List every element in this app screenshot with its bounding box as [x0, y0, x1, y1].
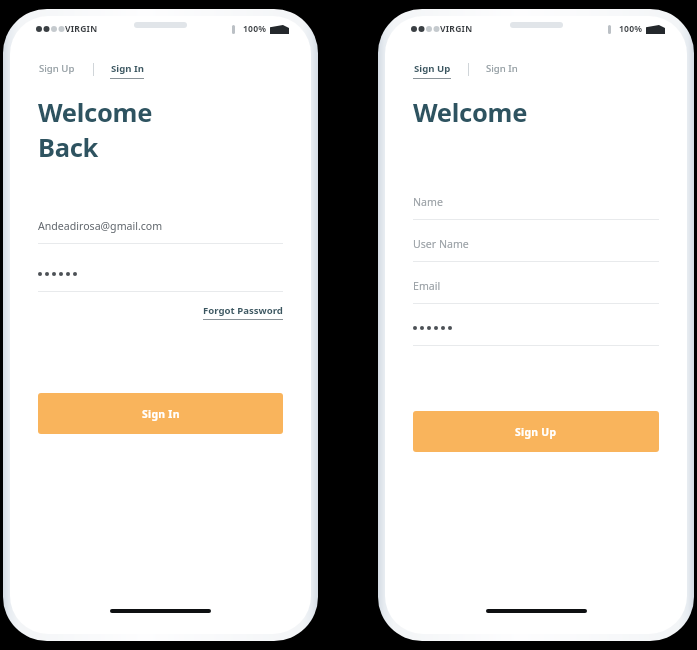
- staticText: Sign In: [111, 62, 144, 75]
- staticText: VIRGIN: [440, 23, 473, 35]
- button[interactable]: Email: [413, 273, 659, 304]
- button[interactable]: [413, 315, 659, 346]
- button[interactable]: Sign In: [485, 62, 519, 79]
- staticText: Andeadirosa@gmail.com: [38, 219, 163, 233]
- staticText: Welcome: [38, 95, 153, 130]
- button[interactable]: Sign Up: [38, 62, 76, 79]
- button[interactable]: Sign In: [110, 62, 144, 79]
- staticText: Sign Up: [515, 425, 557, 439]
- staticText: Sign Up: [414, 62, 451, 75]
- staticText: Welcome: [413, 95, 528, 130]
- staticText: User Name: [413, 237, 469, 251]
- button[interactable]: Forgot Password: [203, 304, 283, 320]
- button[interactable]: Sign Up: [413, 62, 451, 79]
- staticText: 100%: [619, 23, 643, 35]
- button[interactable]: Sign In: [38, 393, 283, 434]
- staticText: Sign Up: [39, 62, 75, 75]
- staticText: Sign In: [142, 407, 180, 421]
- staticText: Sign In: [486, 62, 518, 75]
- staticText: 100%: [243, 23, 267, 35]
- button[interactable]: Andeadirosa@gmail.com: [38, 213, 283, 244]
- staticText: Email: [413, 279, 441, 293]
- staticText: Name: [413, 195, 443, 209]
- button[interactable]: Sign Up: [413, 411, 659, 452]
- staticText: Forgot Password: [203, 304, 283, 317]
- button[interactable]: Name: [413, 189, 659, 220]
- staticText: VIRGIN: [65, 23, 98, 35]
- button[interactable]: User Name: [413, 231, 659, 262]
- staticText: Back: [38, 130, 99, 165]
- button[interactable]: [38, 261, 283, 292]
